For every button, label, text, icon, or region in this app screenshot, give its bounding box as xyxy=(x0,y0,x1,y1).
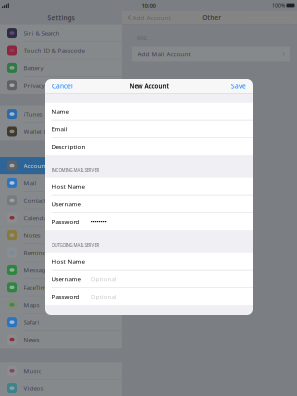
staticText: Add Mail Account xyxy=(137,50,190,58)
button[interactable]: Wallet & Apple Pay xyxy=(0,123,122,140)
staticText: Host Name xyxy=(51,257,84,265)
staticText: Maps xyxy=(23,301,39,309)
staticText: Name xyxy=(51,107,68,115)
staticText: Touch ID & Passcode xyxy=(23,46,84,55)
button[interactable]: Mail xyxy=(0,174,122,192)
button[interactable]: News xyxy=(0,331,122,348)
staticText: Contacts xyxy=(23,196,48,205)
staticText: FaceTime xyxy=(23,283,49,292)
staticText: Password xyxy=(51,217,79,226)
button[interactable]: Messages xyxy=(0,261,122,279)
staticText: OUTGOING MAIL SERVER xyxy=(51,242,99,248)
staticText: Add Account xyxy=(132,13,170,22)
staticText: Siri & Search xyxy=(23,29,59,37)
staticText: 100% xyxy=(272,2,285,9)
button[interactable]: Reminders xyxy=(0,244,122,261)
button[interactable]: Calendar xyxy=(0,209,122,227)
button[interactable]: Music xyxy=(0,362,122,380)
staticText: Calendar xyxy=(23,214,49,222)
button[interactable]: FaceTime xyxy=(0,279,122,296)
button[interactable]: Siri & Search xyxy=(0,25,122,42)
staticText: Accounts & Passwords xyxy=(23,161,89,170)
staticText: New Account xyxy=(129,82,168,90)
staticText: Optional xyxy=(90,275,116,283)
button[interactable]: Contacts xyxy=(0,192,122,209)
staticText: 10:00 xyxy=(141,1,155,9)
staticText: Mail xyxy=(23,179,36,187)
staticText: Username xyxy=(51,275,80,283)
button[interactable]: Battery xyxy=(0,59,122,77)
button[interactable]: Safari xyxy=(0,314,122,331)
button[interactable]: Add Mail Account xyxy=(132,46,290,61)
button[interactable]: Maps xyxy=(0,296,122,314)
staticText: Notes xyxy=(23,231,40,239)
staticText: Battery xyxy=(23,64,43,72)
button[interactable]: Notes xyxy=(0,227,122,244)
staticText: iTunes & App Store xyxy=(23,110,78,118)
staticText: Messages xyxy=(23,266,51,274)
staticText: INCOMING MAIL SERVER xyxy=(51,167,99,173)
staticText: Cancel xyxy=(52,82,73,90)
staticText: Optional xyxy=(90,292,116,301)
button[interactable]: Save xyxy=(226,79,246,93)
staticText: Email xyxy=(51,125,67,133)
staticText: News xyxy=(23,335,39,344)
button[interactable]: Videos xyxy=(0,380,122,396)
staticText: Music xyxy=(23,367,41,375)
staticText: Host Name xyxy=(51,182,84,190)
staticText: Privacy xyxy=(23,81,44,89)
staticText: Videos xyxy=(23,384,43,392)
staticText: Description xyxy=(51,142,85,151)
button[interactable]: Privacy xyxy=(0,77,122,94)
staticText: Save xyxy=(231,82,246,90)
staticText: Settings xyxy=(47,13,74,22)
button[interactable]: Add Account xyxy=(128,13,174,22)
staticText: MAIL xyxy=(137,35,147,41)
button[interactable]: Accounts & Passwords xyxy=(0,157,122,174)
staticText: •••••••• xyxy=(90,217,106,226)
button[interactable]: iTunes & App Store xyxy=(0,106,122,123)
button[interactable]: Cancel xyxy=(52,79,78,93)
staticText: Wallet & Apple Pay xyxy=(23,127,78,136)
button[interactable]: Touch ID & Passcode xyxy=(0,42,122,59)
staticText: Safari xyxy=(23,318,39,326)
staticText: Reminders xyxy=(23,248,55,257)
staticText: Password xyxy=(51,292,79,301)
staticText: Username xyxy=(51,200,80,208)
staticText: Other xyxy=(202,13,221,22)
